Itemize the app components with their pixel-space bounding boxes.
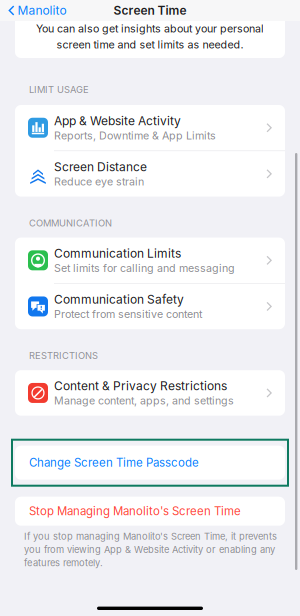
staticText: Reports, Downtime & App Limits bbox=[54, 129, 216, 142]
button[interactable]: Change Screen Time Passcode bbox=[12, 440, 288, 486]
staticText: RESTRICTIONS bbox=[29, 350, 98, 361]
staticText: features remotely. bbox=[24, 557, 103, 569]
button[interactable]: Stop Managing Manolito's Screen Time bbox=[15, 497, 285, 526]
staticText: COMMUNICATION bbox=[29, 217, 112, 229]
staticText: Reduce eye strain bbox=[54, 175, 144, 188]
staticText: LIMIT USAGE bbox=[29, 84, 89, 95]
staticText: Screen Distance bbox=[54, 160, 147, 174]
button[interactable]: App & Website Activity bbox=[15, 105, 285, 150]
staticText: Communication Safety bbox=[54, 292, 184, 307]
staticText: you from viewing App & Website Activity … bbox=[24, 544, 275, 555]
button[interactable]: Screen Distance bbox=[15, 151, 285, 197]
staticText: App & Website Activity bbox=[54, 113, 181, 128]
staticText: Change Screen Time Passcode bbox=[29, 456, 199, 470]
staticText: Content & Privacy Restrictions bbox=[54, 379, 227, 393]
button[interactable]: Content & Privacy Restrictions bbox=[15, 370, 285, 416]
staticText: You can also get insights about your per… bbox=[36, 22, 264, 35]
staticText: Communication Limits bbox=[54, 246, 181, 261]
staticText: screen time and set limits as needed. bbox=[56, 38, 243, 51]
staticText: Manage content, apps, and settings bbox=[54, 394, 234, 407]
staticText: Stop Managing Manolito's Screen Time bbox=[29, 504, 241, 518]
button[interactable]: Back to Manolito bbox=[0, 0, 66, 21]
staticText: Protect from sensitive content bbox=[54, 308, 202, 321]
button[interactable]: Communication Safety bbox=[15, 284, 285, 329]
staticText: Screen Time bbox=[113, 3, 186, 18]
staticText: Set limits for calling and messaging bbox=[54, 262, 235, 275]
staticText: If you stop managing Manolito's Screen T… bbox=[24, 531, 277, 542]
button[interactable]: Communication Limits bbox=[15, 238, 285, 283]
staticText: Manolito bbox=[17, 3, 66, 18]
